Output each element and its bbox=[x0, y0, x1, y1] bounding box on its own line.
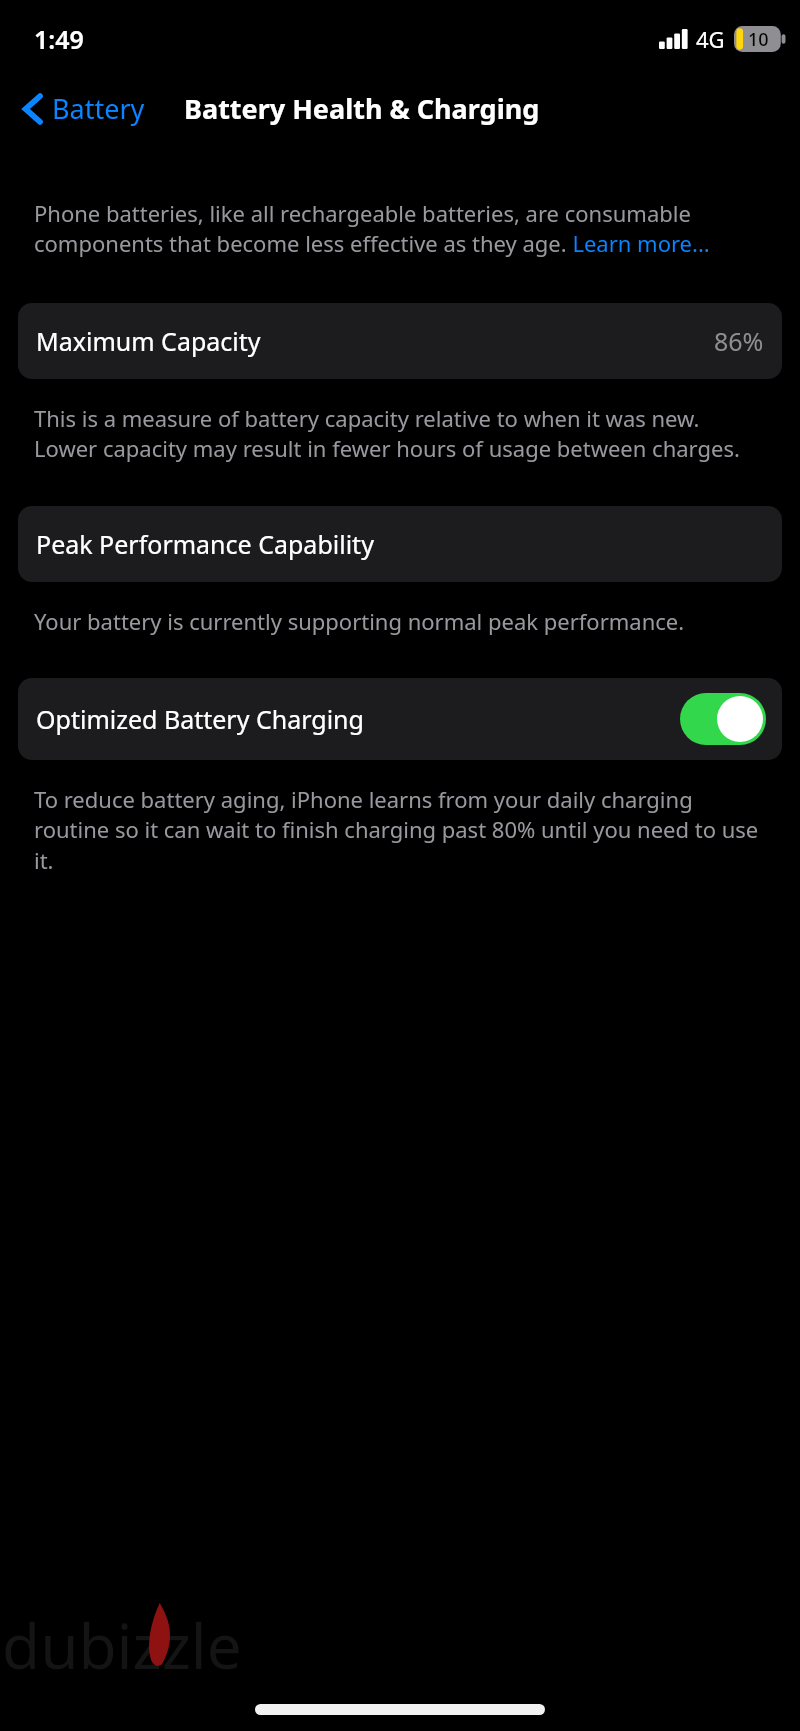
button[interactable]: Peak Performance Capability bbox=[18, 506, 782, 582]
staticText: Your battery is currently supporting nor… bbox=[34, 606, 766, 636]
staticText: Battery bbox=[52, 90, 145, 127]
staticText: Phone batteries, like all rechargeable b… bbox=[34, 198, 766, 259]
staticText: 4G bbox=[696, 24, 725, 54]
staticText: 86% bbox=[714, 324, 764, 358]
staticText: 10 bbox=[748, 27, 769, 52]
button[interactable]: Maximum Capacity bbox=[18, 303, 782, 379]
staticText: To reduce battery aging, iPhone learns f… bbox=[34, 784, 766, 876]
staticText: Peak Performance Capability bbox=[36, 527, 374, 561]
staticText: 1:49 bbox=[34, 22, 84, 56]
button[interactable]: Optimized Battery Charging toggle, on bbox=[680, 693, 766, 745]
staticText: Optimized Battery Charging bbox=[36, 702, 364, 736]
button[interactable]: Battery bbox=[16, 86, 151, 131]
staticText: dubizzle bbox=[2, 1603, 242, 1687]
staticText: Maximum Capacity bbox=[36, 324, 261, 358]
staticText: Battery Health & Charging bbox=[184, 90, 540, 127]
staticText: This is a measure of battery capacity re… bbox=[34, 403, 766, 464]
